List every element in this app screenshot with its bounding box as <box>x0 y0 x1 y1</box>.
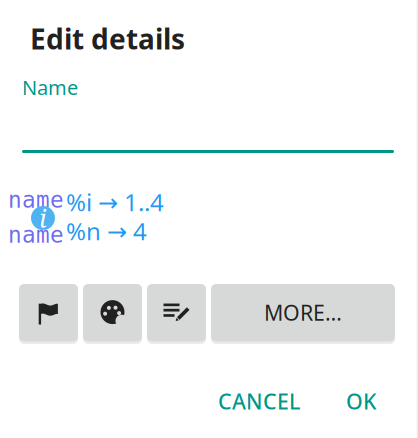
staticText: MORE… <box>264 298 342 327</box>
staticText: name <box>8 222 64 248</box>
button[interactable]: Colour <box>83 284 142 341</box>
staticText: OK <box>346 387 376 415</box>
staticText: name <box>8 187 64 213</box>
button[interactable]: MORE… <box>211 284 395 341</box>
staticText: %i → 1..4 <box>66 186 164 218</box>
staticText: %n → 4 <box>66 215 147 247</box>
button[interactable]: Edit note <box>147 284 206 341</box>
staticText: i <box>39 201 47 235</box>
button[interactable]: CANCEL <box>218 387 300 415</box>
staticText: Edit details <box>30 20 185 57</box>
button[interactable]: OK <box>346 387 376 415</box>
staticText: CANCEL <box>218 387 300 415</box>
staticText: Name <box>22 74 78 101</box>
button[interactable]: Flag <box>19 284 78 341</box>
